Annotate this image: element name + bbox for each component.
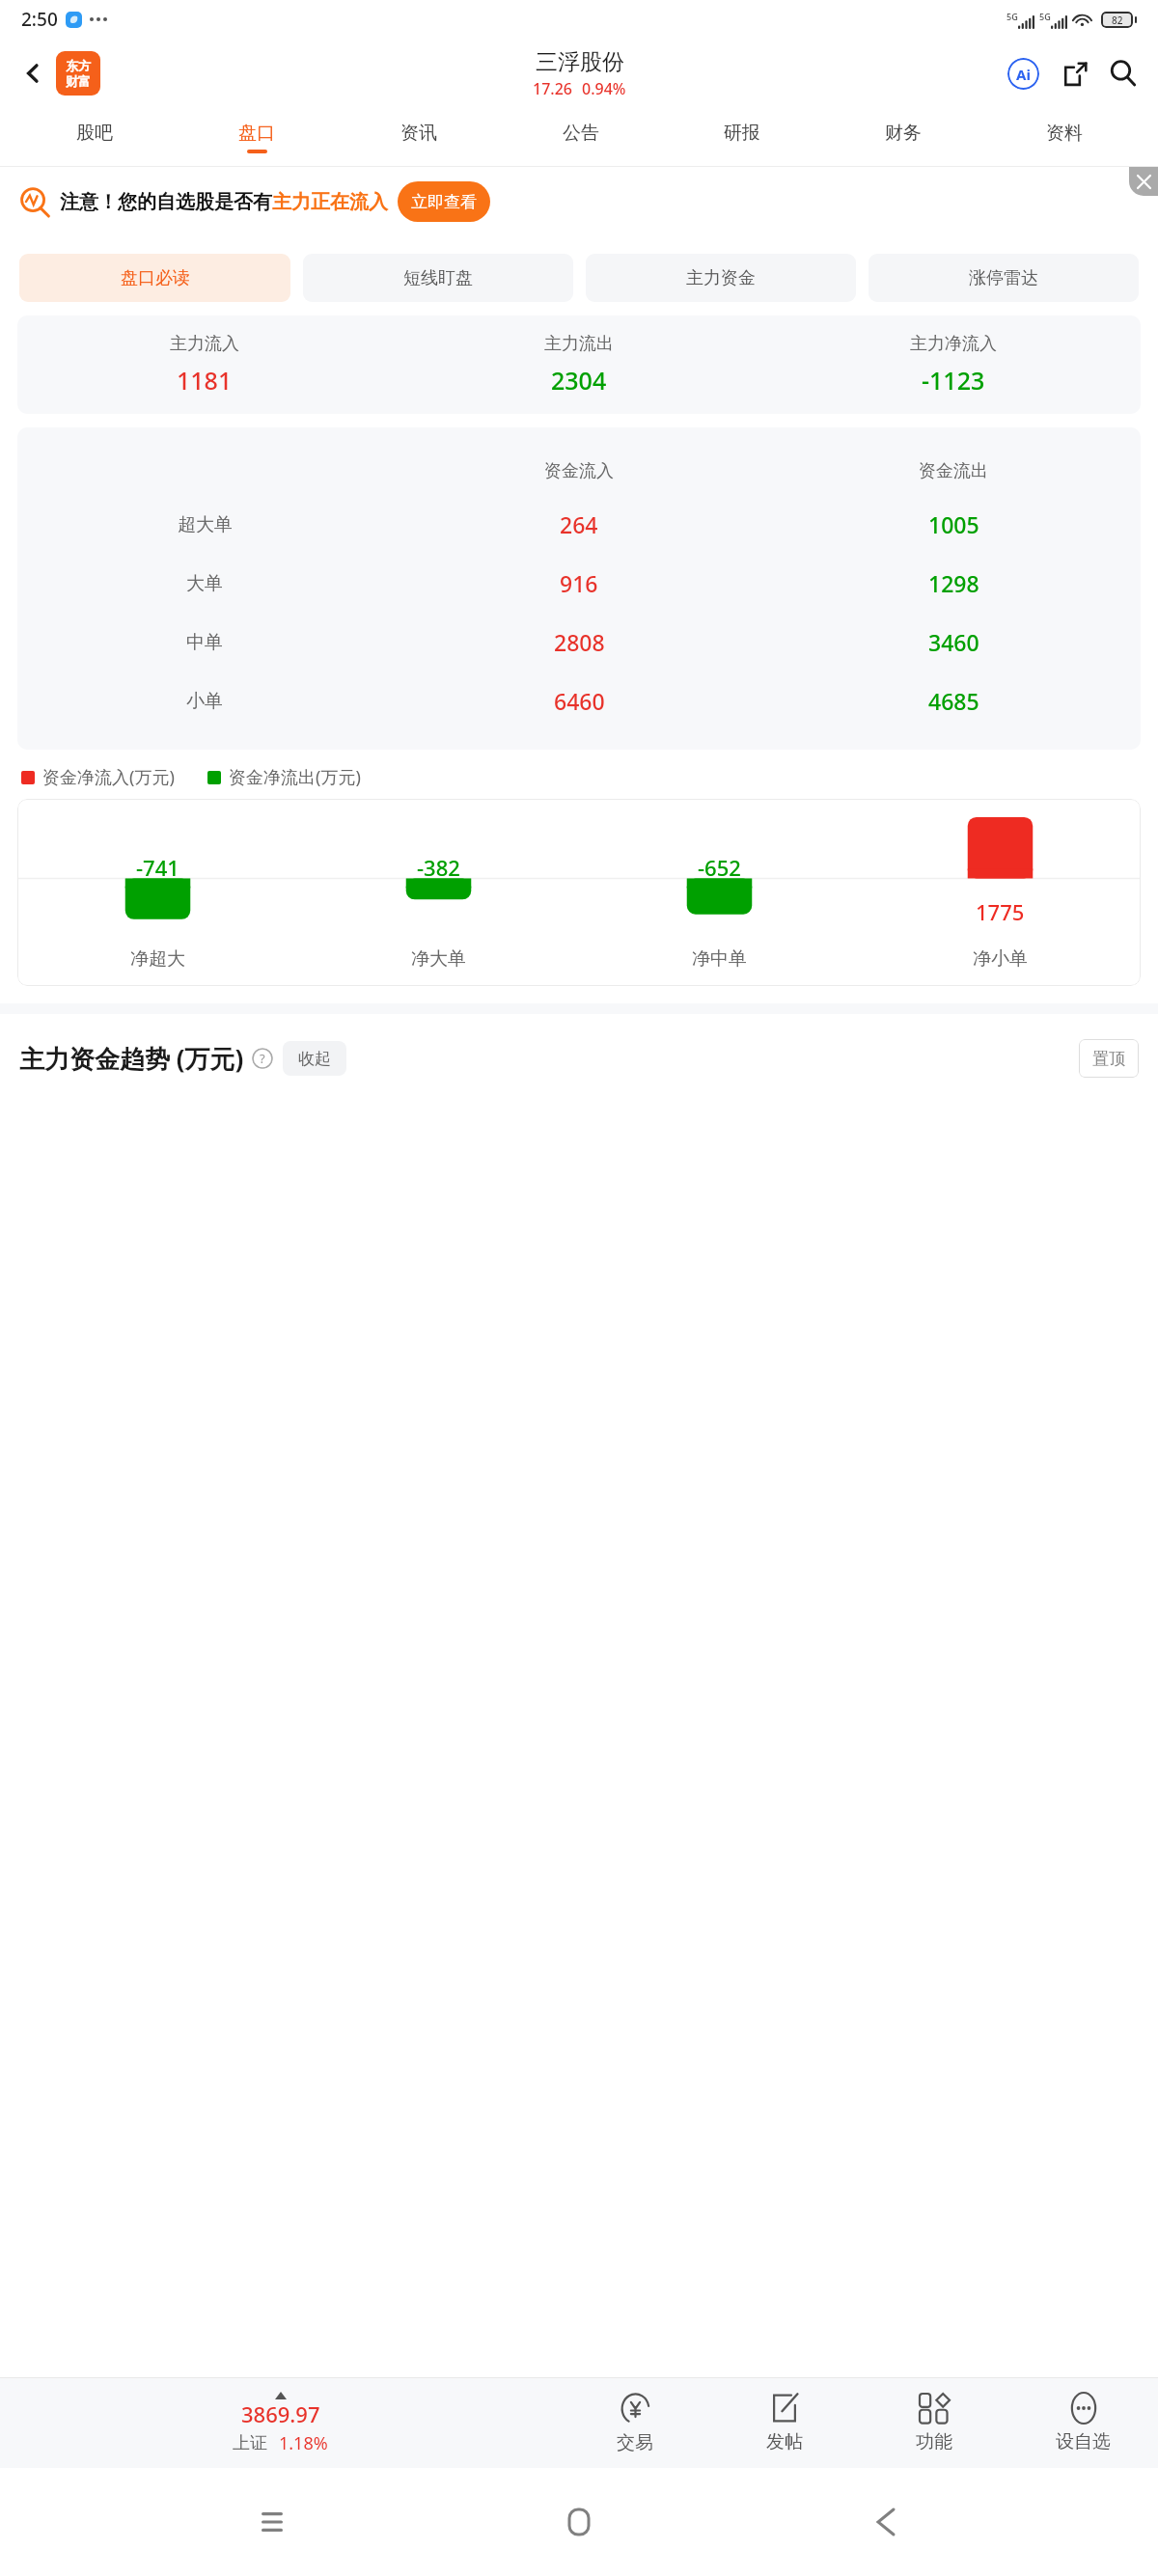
button[interactable]: 涨停雷达 — [868, 254, 1139, 302]
staticText: 盘口 — [238, 122, 275, 145]
button[interactable]: Home — [544, 2487, 614, 2557]
button[interactable]: Share — [1054, 52, 1096, 95]
staticText: 盘口必读 — [121, 267, 190, 289]
staticText: 5G — [1006, 11, 1018, 22]
staticText: 财富 — [66, 73, 91, 89]
staticText: 三浮股份 — [536, 48, 624, 76]
staticText: 1.18% — [279, 2431, 328, 2455]
staticText: 大单 — [186, 572, 223, 595]
staticText: 82 — [1112, 14, 1123, 26]
button[interactable]: 设自选 — [1008, 2378, 1158, 2468]
staticText: 注意！您的自选股是否有 — [60, 190, 272, 214]
staticText: -1123 — [922, 364, 985, 397]
staticText: 主力正在流入 — [272, 190, 388, 214]
staticText: 资金流入 — [544, 460, 614, 482]
staticText: 小单 — [186, 690, 223, 713]
button[interactable]: 东方 — [56, 51, 100, 96]
button[interactable]: 短线盯盘 — [303, 254, 573, 302]
staticText: 发帖 — [766, 2430, 803, 2453]
staticText: 264 — [560, 509, 598, 539]
staticText: 2808 — [554, 627, 605, 657]
button[interactable]: Search — [1102, 52, 1144, 95]
button[interactable]: 研报 — [661, 108, 822, 166]
staticText: 研报 — [724, 122, 760, 145]
button[interactable]: Back — [851, 2487, 921, 2557]
button[interactable]: 发帖 — [709, 2378, 859, 2468]
button[interactable]: 资金流入 — [17, 427, 1141, 750]
staticText: 主力净流入 — [910, 333, 997, 355]
button[interactable]: Close — [1129, 167, 1158, 196]
staticText: 交易 — [617, 2431, 653, 2454]
staticText: 立即查看 — [411, 192, 477, 212]
staticText: 超大单 — [178, 513, 233, 536]
staticText: 收起 — [298, 1049, 331, 1069]
staticText: -382 — [417, 853, 460, 882]
button[interactable]: 立即查看 — [398, 181, 490, 222]
staticText: 净大单 — [411, 947, 466, 971]
button[interactable]: 收起 — [283, 1041, 346, 1076]
button[interactable]: 股吧 — [14, 108, 176, 166]
staticText: 短线盯盘 — [403, 267, 473, 289]
staticText: 4685 — [928, 686, 979, 716]
staticText: -652 — [698, 853, 741, 882]
staticText: 2:50 — [21, 7, 58, 32]
staticText: 上证 — [233, 2432, 267, 2454]
staticText: ? — [260, 1050, 265, 1067]
button[interactable]: 交易 — [560, 2378, 709, 2468]
staticText: 5G — [1039, 11, 1051, 22]
staticText: 3460 — [928, 627, 979, 657]
staticText: 资金流出 — [919, 460, 988, 482]
staticText: 涨停雷达 — [969, 267, 1038, 289]
button[interactable]: 财务 — [822, 108, 983, 166]
staticText: 东方 — [66, 58, 91, 73]
staticText: 1298 — [928, 568, 979, 598]
staticText: 资料 — [1046, 122, 1083, 145]
button[interactable]: 置顶 — [1079, 1039, 1139, 1078]
staticText: 主力资金 — [686, 267, 756, 289]
button[interactable]: 资料 — [983, 108, 1144, 166]
staticText: 1775 — [976, 897, 1025, 926]
staticText: 1005 — [928, 509, 979, 539]
staticText: -741 — [136, 853, 179, 882]
button[interactable]: 主力流入 — [17, 315, 1141, 414]
staticText: 资讯 — [400, 122, 437, 145]
staticText: 置顶 — [1092, 1049, 1125, 1069]
button[interactable]: Help — [252, 1048, 273, 1069]
staticText: 中单 — [186, 631, 223, 654]
staticText: 净超大 — [130, 947, 185, 971]
button[interactable]: 主力资金 — [586, 254, 856, 302]
button[interactable]: 注意！您的自选股是否有 — [19, 167, 1148, 236]
button[interactable]: 3869.97 — [0, 2378, 560, 2468]
staticText: 主力流出 — [544, 333, 614, 355]
staticText: 6460 — [554, 686, 605, 716]
staticText: 功能 — [916, 2430, 952, 2453]
button[interactable]: Recents — [237, 2487, 307, 2557]
button[interactable]: AI — [1002, 52, 1044, 95]
button[interactable]: 资讯 — [338, 108, 500, 166]
staticText: 0.94% — [582, 78, 626, 99]
staticText: 3869.97 — [241, 2399, 320, 2428]
staticText: Ai — [1016, 65, 1031, 84]
staticText: 主力流入 — [170, 333, 239, 355]
staticText: 公告 — [563, 122, 599, 145]
staticText: 17.26 — [533, 78, 572, 99]
button[interactable]: 功能 — [859, 2378, 1008, 2468]
staticText: 资金净流出(万元) — [229, 765, 361, 789]
button[interactable]: 公告 — [500, 108, 661, 166]
button[interactable]: 盘口 — [176, 108, 338, 166]
staticText: 2304 — [551, 364, 607, 397]
staticText: 股吧 — [76, 122, 113, 145]
staticText: 916 — [560, 568, 598, 598]
staticText: 设自选 — [1056, 2430, 1111, 2453]
staticText: 1181 — [177, 364, 233, 397]
staticText: 净小单 — [973, 947, 1028, 971]
button[interactable]: Back — [12, 52, 54, 95]
staticText: 资金净流入(万元) — [42, 765, 175, 789]
button[interactable]: 盘口必读 — [19, 254, 290, 302]
staticText: 净中单 — [692, 947, 747, 971]
staticText: 主力资金趋势 (万元) — [19, 1041, 244, 1076]
button[interactable]: -741 — [17, 799, 1141, 986]
staticText: 财务 — [885, 122, 922, 145]
